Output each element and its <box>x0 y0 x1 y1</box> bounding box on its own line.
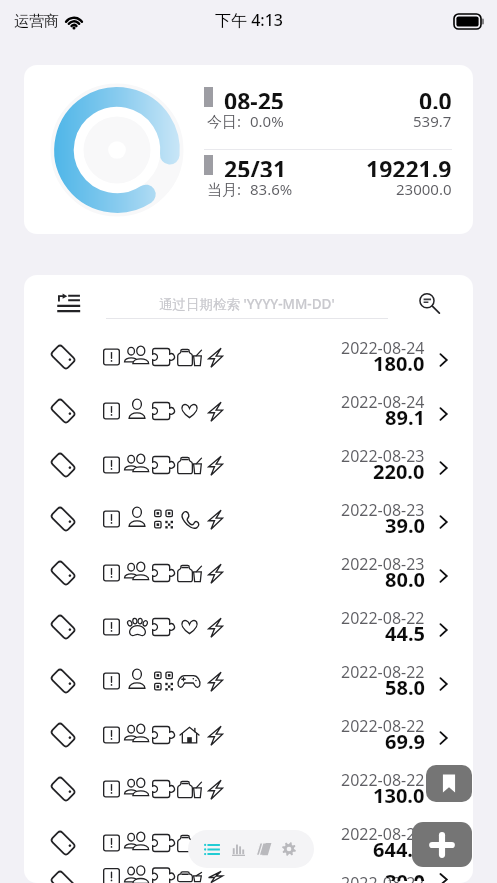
staticText: 83.6% <box>250 179 293 199</box>
button[interactable]: Settings <box>274 834 304 864</box>
staticText: 644.5 <box>373 836 425 863</box>
staticText: 2022-08-22 <box>341 823 425 845</box>
staticText: 通过日期检索 'YYYY-MM-DD' <box>159 295 335 313</box>
button[interactable]: Bookmark <box>426 765 472 802</box>
button[interactable]: 2022-08-22 <box>24 600 473 654</box>
staticText: 180.0 <box>373 350 425 377</box>
staticText: 58.0 <box>385 674 425 701</box>
button[interactable]: 通过日期检索 'YYYY-MM-DD' <box>106 275 388 330</box>
staticText: 今日: <box>207 111 242 131</box>
staticText: 2022-08-23 <box>341 445 425 467</box>
button[interactable]: 2022-08-22 <box>24 708 473 762</box>
button[interactable]: Add <box>412 822 472 867</box>
button[interactable]: 2022-08-23 <box>24 546 473 600</box>
button[interactable]: Search <box>411 285 447 321</box>
button[interactable]: List <box>196 834 226 864</box>
staticText: 2022-08-22 <box>341 607 425 629</box>
staticText: 25/31 <box>224 153 287 177</box>
button[interactable]: 2022-08-22 <box>24 654 473 708</box>
staticText: 130.0 <box>373 782 425 809</box>
button[interactable]: 2022-08-23 <box>24 492 473 546</box>
staticText: 89.1 <box>385 404 425 431</box>
button[interactable]: 2022-08-22 <box>24 762 473 816</box>
staticText: 39.0 <box>385 512 425 539</box>
staticText: 2022-08-22 <box>341 661 425 683</box>
button[interactable]: 08-25 <box>24 65 473 234</box>
staticText: 0.0% <box>250 111 284 131</box>
staticText: 69.9 <box>385 728 425 755</box>
staticText: 0.0 <box>419 85 452 109</box>
staticText: 19221.9 <box>366 153 452 177</box>
staticText: 2022-08-24 <box>341 391 425 413</box>
button[interactable]: 2022-08-24 <box>24 384 473 438</box>
button[interactable]: 2022-08-24 <box>24 330 473 384</box>
staticText: 30.0 <box>385 868 425 881</box>
button[interactable]: 2022-08-22 <box>24 870 473 883</box>
staticText: 80.0 <box>385 566 425 593</box>
staticText: 23000.0 <box>396 179 452 199</box>
staticText: 2022-08-23 <box>341 499 425 521</box>
button[interactable]: Charts <box>223 834 253 864</box>
staticText: 运营商 <box>14 12 59 31</box>
staticText: 2022-08-24 <box>341 337 425 359</box>
staticText: 539.7 <box>413 111 452 131</box>
button[interactable]: 2022-08-23 <box>24 438 473 492</box>
button[interactable]: Sort <box>50 285 86 321</box>
staticText: 08-25 <box>224 85 284 109</box>
staticText: 2022-08-23 <box>341 553 425 575</box>
staticText: 2022-08-22 <box>341 715 425 737</box>
button[interactable]: 2022-08-22 <box>24 816 473 870</box>
button[interactable]: Layers <box>248 834 278 864</box>
staticText: 当月: <box>207 179 242 199</box>
staticText: 下午 4:13 <box>215 9 283 31</box>
staticText: 220.0 <box>373 458 425 485</box>
staticText: 44.5 <box>385 620 425 647</box>
staticText: 2022-08-22 <box>341 769 425 791</box>
staticText: 2022-08-22 <box>341 872 425 883</box>
